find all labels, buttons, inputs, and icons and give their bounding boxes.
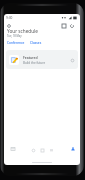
button[interactable]: Classes	[29, 41, 43, 45]
button[interactable]: Featured	[6, 50, 78, 69]
staticText: Classes	[30, 41, 42, 45]
button[interactable]: Apps	[5, 22, 13, 30]
button[interactable]: Map	[60, 22, 68, 30]
staticText: Conference	[7, 41, 25, 45]
button[interactable]: Codelabs	[49, 146, 54, 154]
button[interactable]: Bookmark	[69, 57, 75, 63]
button[interactable]: Refresh	[68, 22, 76, 30]
staticText: Featured	[23, 55, 38, 60]
button[interactable]: Schedule	[9, 144, 17, 154]
button[interactable]: Info	[31, 146, 36, 154]
button[interactable]: Conference	[6, 41, 26, 45]
staticText: Your schedule	[7, 28, 38, 34]
button[interactable]: Map	[40, 146, 45, 154]
staticText: Tue, 18 May	[7, 34, 22, 38]
button[interactable]: Account	[69, 144, 77, 154]
staticText: 9:30	[6, 16, 13, 20]
staticText: Build the future	[23, 61, 46, 65]
